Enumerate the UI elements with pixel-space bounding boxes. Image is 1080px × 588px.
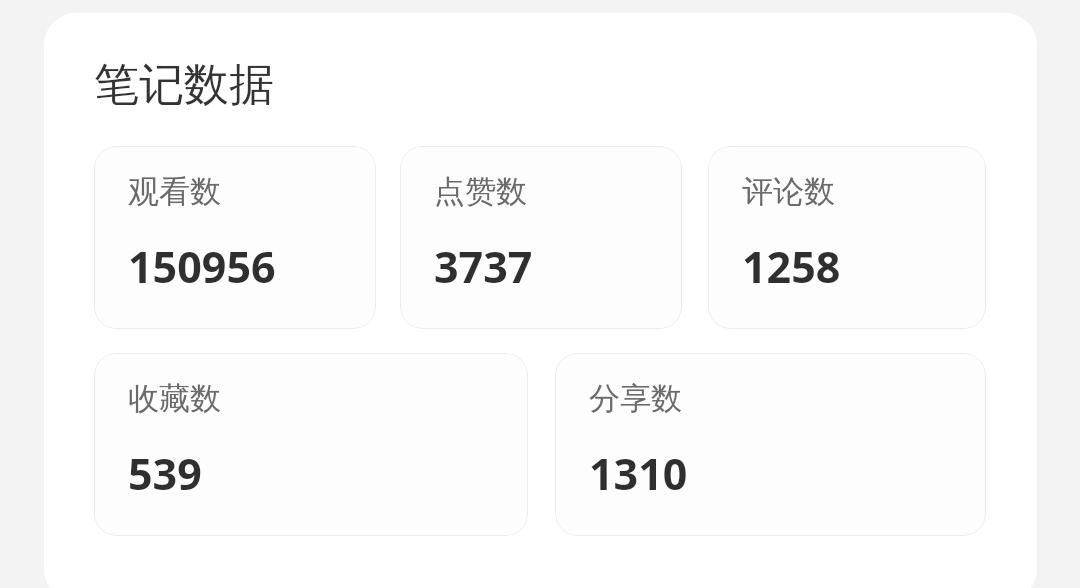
staticText: 收藏数: [128, 379, 221, 418]
staticText: 1258: [742, 237, 841, 296]
staticText: 分享数: [589, 379, 682, 418]
button[interactable]: 观看数: [94, 146, 376, 329]
button[interactable]: 收藏数: [94, 353, 528, 536]
staticText: 笔记数据: [94, 57, 274, 114]
staticText: 539: [128, 444, 202, 503]
staticText: 3737: [434, 237, 533, 296]
staticText: 观看数: [128, 172, 221, 211]
button[interactable]: 分享数: [555, 353, 986, 536]
button[interactable]: 评论数: [708, 146, 986, 329]
button[interactable]: 点赞数: [400, 146, 682, 329]
staticText: 150956: [128, 237, 276, 296]
staticText: 点赞数: [434, 172, 527, 211]
staticText: 1310: [589, 444, 688, 503]
staticText: 评论数: [742, 172, 835, 211]
